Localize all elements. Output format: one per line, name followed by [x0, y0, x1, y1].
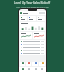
- button[interactable]: [20, 52, 45, 55]
- button[interactable]: [20, 49, 45, 52]
- button[interactable]: [26, 62, 31, 66]
- button[interactable]: Home: [20, 67, 26, 71]
- button[interactable]: [20, 62, 25, 66]
- button[interactable]: [20, 40, 45, 43]
- button[interactable]: [20, 32, 32, 39]
- button[interactable]: [20, 22, 45, 31]
- button[interactable]: [20, 43, 45, 46]
- button[interactable]: [39, 62, 45, 66]
- button[interactable]: [33, 32, 45, 39]
- button[interactable]: [28, 16, 36, 21]
- button[interactable]: [32, 62, 38, 66]
- button[interactable]: Reports: [26, 67, 32, 71]
- button[interactable]: [20, 16, 27, 21]
- staticText: Plan, track and celebrate every win: [16, 6, 49, 9]
- button[interactable]: Team: [33, 67, 39, 71]
- button[interactable]: Profile: [39, 67, 45, 71]
- button[interactable]: [20, 46, 45, 49]
- staticText: with the all-new dashboard: [21, 9, 44, 11]
- button[interactable]: [37, 16, 45, 21]
- button[interactable]: App logo: [20, 12, 22, 14]
- staticText: Level Up Your Sales Kickoff: [14, 1, 50, 5]
